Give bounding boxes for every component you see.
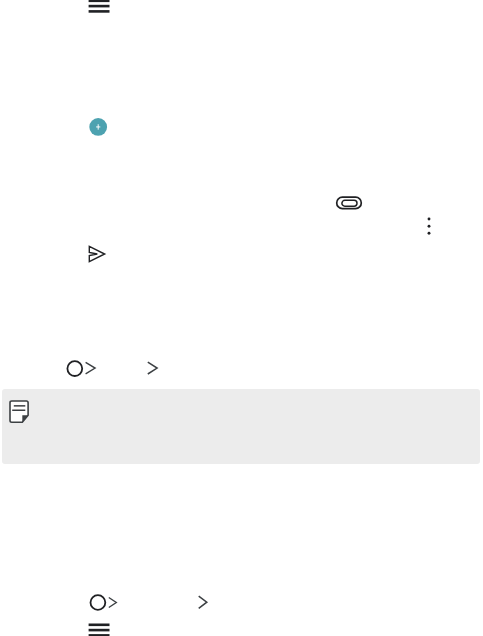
button[interactable]: Send <box>77 234 119 276</box>
button[interactable]: Add <box>86 115 110 139</box>
button[interactable]: Menu <box>78 610 120 636</box>
button[interactable]: Attach file <box>329 183 371 225</box>
button[interactable] <box>2 389 480 464</box>
button[interactable]: Breadcrumb <box>83 588 213 618</box>
button[interactable]: More options <box>409 206 449 246</box>
button[interactable]: Menu <box>78 0 120 28</box>
button[interactable]: Breadcrumb <box>60 354 170 384</box>
